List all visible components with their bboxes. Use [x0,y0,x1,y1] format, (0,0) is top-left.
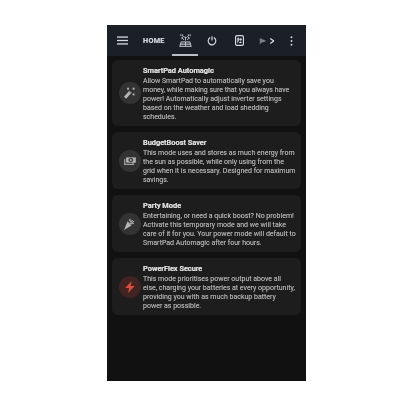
staticText: Party Mode [143,201,182,210]
button[interactable]: Flag [255,25,271,56]
button[interactable]: Party Mode [112,195,301,252]
staticText: Entertaining, or need a quick boost? No … [143,212,296,247]
button[interactable]: SmartPad Automagic [112,60,301,126]
staticText: PowerFlex Secure [143,264,203,273]
button[interactable]: HOME [140,24,168,55]
button[interactable]: Solar [172,25,198,56]
staticText: Allow SmartPad to automatically save you… [143,77,296,121]
staticText: BudgetBoost Saver [143,138,207,147]
button[interactable]: Battery [227,25,251,56]
staticText: This mode prioritises power output above… [143,275,296,310]
button[interactable]: BudgetBoost Saver [112,132,301,189]
staticText: HOME [143,36,165,44]
button[interactable]: More options [283,25,299,56]
staticText: This mode uses and stores as much energy… [143,149,296,184]
button[interactable]: Menu [109,25,135,56]
button[interactable]: Next [264,25,280,56]
button[interactable]: PowerFlex Secure [112,258,301,315]
button[interactable]: Power [200,25,224,56]
staticText: SmartPad Automagic [143,66,214,75]
